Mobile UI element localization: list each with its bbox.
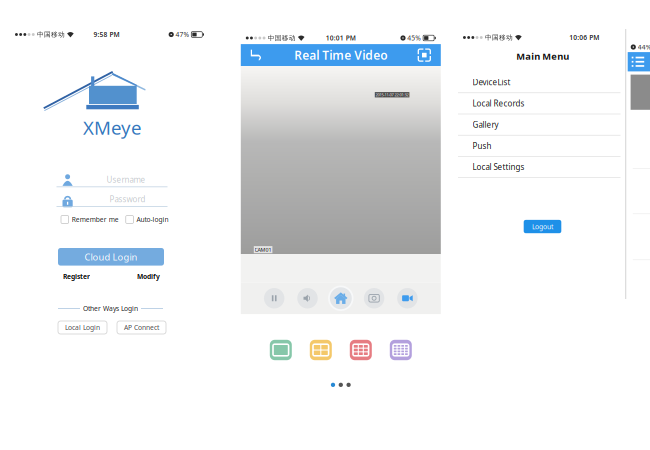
staticText: Other Ways Login xyxy=(83,304,138,313)
button[interactable]: Split 3 by 3 xyxy=(349,339,373,361)
staticText: Register xyxy=(63,272,90,281)
button[interactable]: Sound xyxy=(294,285,320,311)
button[interactable]: Split 4 by 4 xyxy=(389,339,413,361)
staticText: 中国移动 xyxy=(268,34,296,42)
button[interactable]: Full screen xyxy=(418,49,431,62)
button[interactable]: Local Records xyxy=(458,93,620,114)
staticText: 10:01 PM xyxy=(326,34,356,42)
staticText: Real Time Video xyxy=(294,47,387,63)
button[interactable]: Pause xyxy=(261,285,287,311)
staticText: 中国移动 xyxy=(37,30,65,39)
staticText: Auto-login xyxy=(137,215,169,224)
button[interactable]: DeviceList xyxy=(458,72,620,93)
staticText: 10:06 PM xyxy=(569,33,599,42)
staticText: CAM01 xyxy=(255,246,272,253)
staticText: Remember me xyxy=(72,215,119,224)
button[interactable]: Logout xyxy=(524,220,561,233)
button[interactable]: Local Login xyxy=(58,321,107,334)
staticText: 中国移动 xyxy=(485,33,513,42)
button[interactable]: Gallery xyxy=(458,114,620,135)
button[interactable]: Snapshot xyxy=(361,285,387,311)
staticText: Local Login xyxy=(65,323,100,332)
staticText: 2015-11-07 22:01:32 xyxy=(376,92,409,97)
button[interactable]: Modify xyxy=(137,272,160,281)
staticText: DeviceList xyxy=(472,77,510,87)
button[interactable]: Split 1 by 1 xyxy=(269,339,293,361)
button[interactable]: Home xyxy=(328,285,354,311)
button[interactable]: Back xyxy=(251,49,263,61)
staticText: 9:58 PM xyxy=(93,30,119,39)
button[interactable]: Auto-login xyxy=(126,215,169,224)
staticText: Username xyxy=(106,174,145,185)
button[interactable]: Record xyxy=(394,285,420,311)
staticText: Push xyxy=(472,140,491,151)
staticText: 44% xyxy=(638,43,650,51)
button[interactable]: Register xyxy=(63,272,90,281)
button[interactable]: AP Connect xyxy=(117,321,166,334)
button[interactable]: Local Settings xyxy=(458,157,620,178)
staticText: Gallery xyxy=(472,119,498,130)
button[interactable]: Push xyxy=(458,135,620,157)
staticText: 47% xyxy=(175,30,189,39)
button[interactable]: Split 2 by 2 xyxy=(309,339,333,361)
button[interactable]: Cloud Login xyxy=(58,248,164,266)
staticText: Logout xyxy=(532,222,553,231)
staticText: Main Menu xyxy=(516,50,569,62)
staticText: Local Settings xyxy=(472,162,524,172)
staticText: Modify xyxy=(137,272,160,281)
button[interactable]: Remember me xyxy=(61,215,119,224)
staticText: XMeye xyxy=(83,115,142,140)
staticText: Password xyxy=(109,194,145,204)
staticText: 45% xyxy=(407,34,421,42)
staticText: Cloud Login xyxy=(84,251,137,263)
staticText: Local Records xyxy=(472,98,524,109)
staticText: AP Connect xyxy=(124,323,159,332)
